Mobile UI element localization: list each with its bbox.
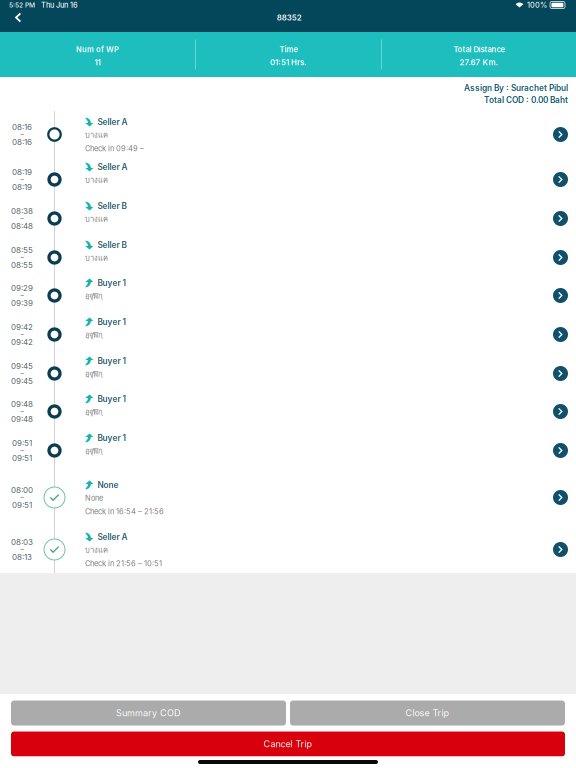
staticText: 09:51 [12, 438, 32, 448]
staticText: Summary COD [116, 707, 181, 718]
staticText: บางแค [85, 174, 108, 186]
staticText: – [20, 253, 23, 262]
staticText: Seller B [98, 240, 127, 250]
staticText: 08:19 [12, 182, 32, 192]
staticText: Close Trip [405, 707, 449, 718]
button[interactable]: Close Trip [290, 700, 565, 725]
staticText: 09:39 [11, 298, 33, 308]
staticText: อฺจุฬิกฺ [85, 368, 103, 380]
button[interactable]: 08:55 [0, 234, 576, 272]
staticText: 100% [527, 1, 547, 9]
staticText: – [20, 330, 23, 339]
staticText: 01:51 Hrs. [270, 58, 307, 67]
staticText: Seller B [98, 201, 127, 211]
staticText: 08:19 [12, 167, 32, 177]
button[interactable]: 08:16 [0, 111, 576, 156]
staticText: 08:55 [11, 245, 33, 255]
staticText: อฺจุฬิกฺ [85, 329, 103, 341]
staticText: 27.67 Km. [459, 58, 498, 67]
staticText: 09:51 [12, 453, 32, 463]
staticText: Time [279, 45, 297, 54]
staticText: Seller A [98, 117, 128, 127]
staticText: 08:13 [12, 552, 32, 562]
staticText: – [20, 291, 23, 300]
staticText: Buyer 1 [98, 278, 126, 288]
staticText: อฺจุฬิกฺ [85, 445, 103, 457]
staticText: – [20, 493, 23, 502]
staticText: บางแค [85, 252, 108, 264]
staticText: 5:52 PM [9, 1, 35, 9]
button[interactable]: 08:03 [0, 526, 576, 573]
button[interactable]: 08:38 [0, 195, 576, 234]
staticText: – [20, 446, 23, 455]
staticText: None [85, 493, 103, 502]
staticText: 09:51 [12, 500, 32, 510]
staticText: Total COD : 0.00 Baht [484, 95, 568, 105]
staticText: บางแค [85, 213, 108, 225]
staticText: อฺจุฬิกฺ [85, 290, 103, 302]
staticText: 09:45 [11, 361, 33, 371]
button[interactable]: Cancel Trip [11, 731, 565, 756]
staticText: 08:00 [11, 485, 33, 495]
staticText: 88352 [277, 13, 302, 22]
staticText: Total Distance [453, 45, 504, 54]
staticText: 08:38 [11, 206, 33, 216]
staticText: 09:48 [11, 399, 33, 409]
staticText: อฺจุฬิกฺ [85, 406, 103, 418]
staticText: Check in 16:54 – 21:56 [85, 507, 164, 516]
staticText: Cancel Trip [263, 738, 312, 749]
button[interactable]: 08:19 [0, 156, 576, 195]
staticText: Buyer 1 [98, 394, 126, 404]
staticText: Check in 21:56 – 10:51 [85, 559, 162, 568]
button[interactable]: Back [0, 11, 33, 24]
button[interactable]: 09:42 [0, 311, 576, 350]
staticText: 09:29 [11, 283, 33, 293]
button[interactable]: Summary COD [11, 700, 286, 725]
staticText: 09:42 [11, 322, 33, 332]
staticText: None [98, 480, 119, 490]
staticText: 08:55 [11, 260, 33, 270]
button[interactable]: 09:48 [0, 388, 576, 427]
staticText: 09:48 [11, 414, 33, 424]
staticText: – [20, 545, 23, 554]
staticText: 11 [94, 58, 100, 67]
staticText: Assign By : Surachet Pibul [464, 83, 568, 93]
staticText: – [20, 369, 23, 378]
button[interactable]: 09:45 [0, 350, 576, 388]
staticText: Seller A [98, 532, 128, 542]
staticText: – [20, 130, 23, 139]
staticText: Buyer 1 [98, 433, 126, 443]
staticText: Thu Jun 16 [41, 1, 78, 9]
staticText: – [20, 175, 23, 184]
staticText: 09:45 [11, 376, 33, 386]
button[interactable]: 09:51 [0, 427, 576, 474]
staticText: – [20, 407, 23, 416]
staticText: Buyer 1 [98, 356, 126, 366]
staticText: 08:16 [12, 137, 32, 147]
button[interactable]: 08:00 [0, 474, 576, 526]
staticText: – [20, 214, 23, 223]
staticText: 09:42 [11, 337, 33, 347]
staticText: Check in 09:49 – [85, 144, 144, 153]
staticText: Buyer 1 [98, 317, 126, 327]
staticText: Seller A [98, 162, 128, 172]
staticText: บางแค [85, 129, 108, 141]
staticText: Num of WP [76, 45, 119, 54]
button[interactable]: 09:29 [0, 272, 576, 311]
staticText: บางแค [85, 544, 108, 556]
staticText: 08:03 [11, 537, 33, 547]
staticText: 08:48 [11, 221, 33, 231]
staticText: 08:16 [12, 122, 32, 132]
